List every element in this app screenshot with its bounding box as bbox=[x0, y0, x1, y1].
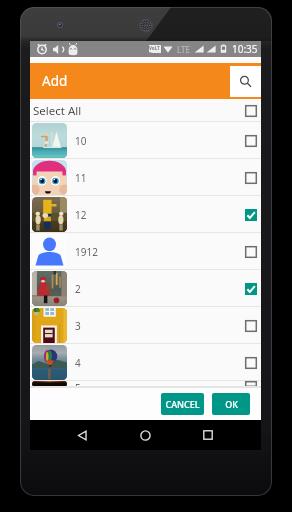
staticText: 5 bbox=[75, 381, 81, 387]
button[interactable]: OK bbox=[212, 393, 250, 415]
button[interactable]: Home bbox=[132, 422, 158, 448]
staticText: 1912 bbox=[75, 245, 98, 259]
button[interactable]: Select All bbox=[30, 99, 261, 122]
staticText: 2 bbox=[75, 282, 81, 296]
button[interactable]: 5 bbox=[30, 381, 261, 387]
button[interactable]: 10 bbox=[30, 122, 261, 159]
staticText: OK bbox=[225, 398, 238, 410]
button[interactable]: 12 bbox=[30, 196, 261, 233]
staticText: LTE bbox=[177, 44, 191, 55]
button[interactable]: 2 bbox=[30, 270, 261, 307]
button[interactable]: 4 bbox=[30, 344, 261, 381]
staticText: 10:35 bbox=[232, 42, 258, 56]
button[interactable]: 3 bbox=[30, 307, 261, 344]
button[interactable]: Back bbox=[69, 422, 95, 448]
staticText: VoLTE bbox=[149, 45, 161, 53]
button[interactable]: Recent apps bbox=[195, 422, 221, 448]
staticText: Add bbox=[42, 72, 68, 90]
staticText: 4 bbox=[75, 356, 81, 370]
button[interactable]: 1912 bbox=[30, 233, 261, 270]
button[interactable]: Search bbox=[230, 66, 261, 97]
staticText: 11 bbox=[75, 171, 87, 185]
staticText: Select All bbox=[33, 103, 82, 119]
staticText: CANCEL bbox=[165, 398, 200, 410]
staticText: 12 bbox=[75, 208, 87, 222]
button[interactable]: CANCEL bbox=[161, 393, 204, 415]
button[interactable]: 11 bbox=[30, 159, 261, 196]
staticText: 10 bbox=[75, 134, 87, 148]
staticText: 3 bbox=[75, 319, 81, 333]
